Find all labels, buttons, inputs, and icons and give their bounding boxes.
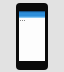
button[interactable]: [19, 19, 45, 21]
